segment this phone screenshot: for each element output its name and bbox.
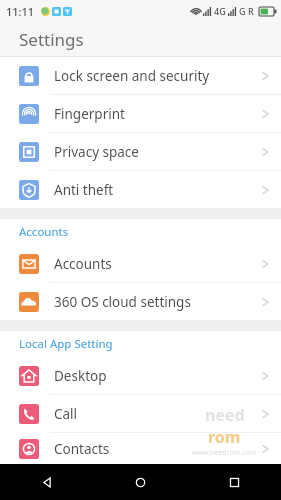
staticText: www.needrom.com: [192, 448, 257, 458]
staticText: Accounts: [19, 224, 69, 240]
staticText: 4G: [214, 5, 226, 17]
staticText: Local App Setting: [19, 336, 113, 352]
button[interactable]: Contacts: [0, 433, 281, 464]
button[interactable]: Anti theft: [0, 171, 281, 208]
button[interactable]: Lock screen and security: [0, 57, 281, 95]
button[interactable]: Recent apps: [187, 464, 281, 500]
staticText: Contacts: [54, 440, 262, 458]
staticText: G R: [239, 5, 254, 17]
button[interactable]: 360 OS cloud settings: [0, 283, 281, 320]
staticText: Accounts: [54, 255, 262, 273]
staticText: Fingerprint: [54, 105, 262, 123]
staticText: 360 OS cloud settings: [54, 293, 262, 311]
button[interactable]: Home: [93, 464, 187, 500]
button[interactable]: Desktop: [0, 357, 281, 395]
button[interactable]: Call: [0, 395, 281, 433]
staticText: Anti theft: [54, 181, 262, 199]
staticText: Lock screen and security: [54, 67, 262, 85]
staticText: Desktop: [54, 367, 262, 385]
staticText: need: [205, 404, 245, 426]
staticText: 11:11: [6, 4, 35, 19]
staticText: rom: [208, 426, 241, 448]
button[interactable]: Privacy space: [0, 133, 281, 171]
staticText: Settings: [19, 28, 84, 51]
staticText: Privacy space: [54, 143, 262, 161]
button[interactable]: Back: [0, 464, 93, 500]
staticText: Call: [54, 405, 262, 423]
button[interactable]: Fingerprint: [0, 95, 281, 133]
button[interactable]: Accounts: [0, 245, 281, 283]
